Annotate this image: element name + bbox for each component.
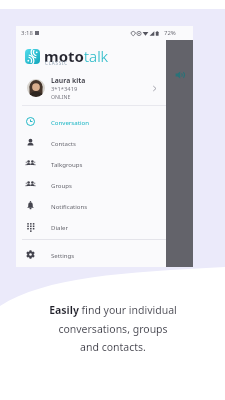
staticText: Notifications [51,202,88,210]
staticText: 3:18 [21,29,33,37]
staticText: 3*1*3419 [51,85,78,93]
button[interactable]: Settings [16,244,193,265]
staticText: Talkgroups [51,160,83,168]
staticText: Settings [51,251,75,259]
staticText: talk [84,46,109,66]
button[interactable]: Contacts [16,132,193,153]
button[interactable]: Laura kita [16,74,166,102]
button[interactable]: Dialer [16,216,193,237]
button[interactable]: Notifications [16,195,193,216]
staticText: Groups [51,181,72,189]
staticText: Conversation [51,118,89,126]
button[interactable]: Conversation [16,111,193,132]
staticText: Dialer [51,223,68,231]
button[interactable]: Groups [16,174,193,195]
button[interactable]: Volume [175,70,185,80]
button[interactable]: Talkgroups [16,153,193,174]
staticText: moto [44,46,84,66]
staticText: Easily find your individual conversation… [49,303,177,354]
staticText: ONLINE [51,93,71,100]
staticText: 72% [164,29,176,37]
staticText: Laura kita [51,76,86,85]
staticText: Contacts [51,139,76,147]
staticText: CLASSIC [45,60,68,66]
